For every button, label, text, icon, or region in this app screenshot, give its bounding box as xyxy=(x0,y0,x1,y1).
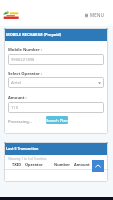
staticText: Number xyxy=(54,162,71,167)
staticText: Mobile Number : xyxy=(8,47,43,53)
staticText: MENU xyxy=(90,12,105,18)
button[interactable]: Scroll to top xyxy=(92,160,104,172)
button[interactable]: Search Plan xyxy=(46,116,68,124)
staticText: 9906321898 xyxy=(11,57,35,63)
staticText: TXID xyxy=(12,162,22,167)
staticText: Showing 1 to 5 of 5 entries xyxy=(8,157,47,161)
staticText: MOBILE RECHARGE (Prepaid) xyxy=(6,32,62,37)
staticText: Airtel xyxy=(11,80,22,86)
staticText: Search Plan xyxy=(46,118,68,123)
staticText: Amount : xyxy=(8,95,27,101)
staticText: Last 5 Transaction xyxy=(6,146,39,151)
button[interactable]: Menu xyxy=(83,10,107,20)
staticText: Amount xyxy=(74,162,90,167)
staticText: Select Operator : xyxy=(8,71,43,77)
button[interactable]: 110 xyxy=(8,102,104,113)
button[interactable]: 9906321898 xyxy=(8,54,104,65)
staticText: 110 xyxy=(11,105,19,111)
button[interactable]: Airtel xyxy=(8,77,104,88)
staticText: Processing... xyxy=(8,119,33,125)
staticText: Operator xyxy=(25,162,43,167)
